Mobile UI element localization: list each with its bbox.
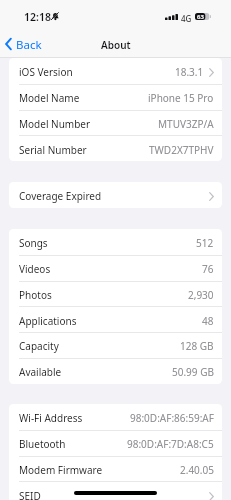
staticText: 12:18 [24,10,51,24]
button[interactable]: Coverage Expired [9,182,222,208]
other: Silent mode [51,12,59,20]
staticText: Modem Firmware [19,463,103,477]
staticText: 2,930 [188,288,214,302]
button[interactable]: SEID [9,482,222,500]
staticText: Bluetooth [19,437,66,451]
staticText: 98:0D:AF:86:59:AF [130,411,214,425]
staticText: Capacity [19,339,59,353]
button[interactable]: Bluetooth [9,430,222,456]
button[interactable]: Model Name [9,84,222,110]
staticText: MTUV3ZP/A [158,117,214,131]
button[interactable]: Songs [9,229,222,255]
button[interactable]: Modem Firmware [9,456,222,482]
staticText: Songs [19,236,48,250]
staticText: About [101,38,131,52]
staticText: iOS Version [19,65,73,79]
staticText: 4G [181,13,192,24]
staticText: iPhone 15 Pro [148,91,214,105]
staticText: 2.40.05 [180,463,214,477]
staticText: 63 [197,13,204,20]
other: Battery 63 percent [195,13,211,20]
staticText: Applications [19,314,77,328]
other: Cellular signal [165,14,178,20]
staticText: Model Name [19,91,80,105]
button[interactable]: Serial Number [9,136,222,161]
button[interactable]: Videos [9,255,222,281]
staticText: Videos [19,262,51,276]
staticText: 98:0D:AF:7D:A8:C5 [127,437,214,451]
staticText: Model Number [19,117,91,131]
staticText: Available [19,365,62,379]
staticText: TWD2X7TPHV [149,143,214,157]
staticText: Wi-Fi Address [19,411,83,425]
button[interactable]: iOS Version [9,58,222,84]
staticText: Serial Number [19,143,87,157]
button[interactable]: Model Number [9,110,222,136]
staticText: Coverage Expired [19,189,102,203]
staticText: 76 [202,262,214,276]
staticText: 512 [196,236,214,250]
button[interactable]: Applications [9,307,222,333]
staticText: 128 GB [180,339,214,353]
staticText: 50.99 GB [172,365,214,379]
staticText: 48 [202,314,214,328]
staticText: Photos [19,288,52,302]
staticText: Back [16,37,42,53]
button[interactable]: Back [5,31,42,57]
button[interactable]: Capacity [9,332,222,358]
staticText: 18.3.1 [175,65,204,79]
button[interactable]: Photos [9,281,222,307]
staticText: SEID [19,489,41,500]
button[interactable]: Wi-Fi Address [9,404,222,430]
button[interactable]: Available [9,358,222,384]
